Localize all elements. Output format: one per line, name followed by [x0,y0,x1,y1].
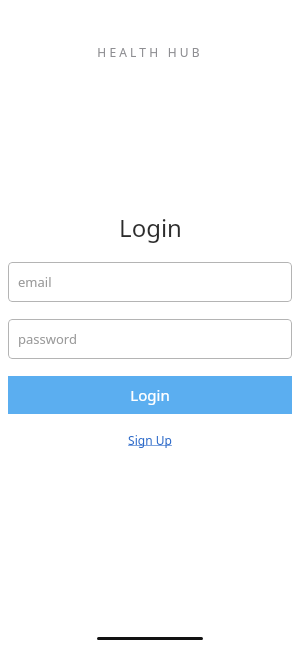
staticText: Login [130,385,170,405]
staticText: Login [119,211,182,244]
staticText: HEALTH HUB [97,44,203,60]
staticText: email [18,273,52,291]
staticText: Sign Up [128,432,172,448]
button[interactable]: Login [8,376,292,414]
staticText: password [18,330,77,348]
other: Home indicator [97,637,203,640]
button[interactable]: password [8,319,292,359]
button[interactable]: email [8,262,292,302]
button[interactable]: Sign Up [122,430,178,450]
